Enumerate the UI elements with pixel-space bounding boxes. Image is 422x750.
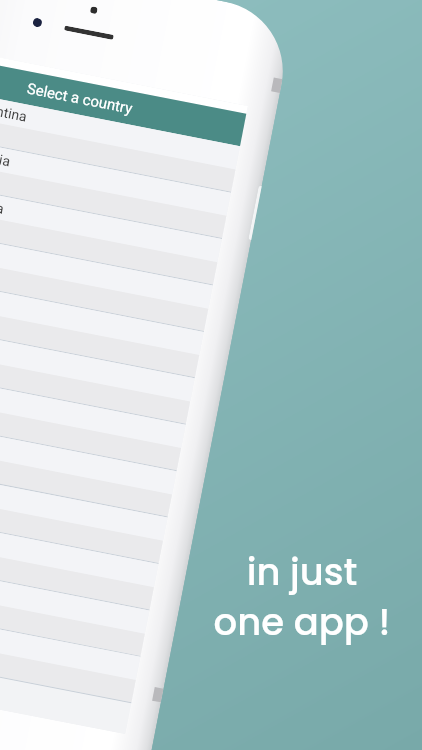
button[interactable]: Azerbaijan <box>0 278 204 378</box>
button[interactable]: Select a country <box>0 60 246 146</box>
button[interactable]: Bangladesh <box>0 417 176 517</box>
button[interactable]: Austria <box>0 232 213 332</box>
button[interactable]: Barbados <box>0 463 167 563</box>
button[interactable]: Bahamas <box>0 325 194 425</box>
staticText: Armenia <box>0 144 12 169</box>
staticText: Australia <box>0 191 6 217</box>
button[interactable]: Armenia <box>0 139 231 238</box>
staticText: Select a country <box>25 79 134 118</box>
button[interactable]: Belarus <box>0 511 158 610</box>
button[interactable]: Argentina <box>0 92 240 192</box>
button[interactable]: Bahrain <box>0 371 185 471</box>
staticText: one app ! <box>182 596 422 648</box>
other: Power button <box>248 185 262 240</box>
staticText: in just <box>182 546 422 598</box>
button[interactable]: Australia <box>0 186 222 286</box>
button[interactable]: Belize <box>0 603 140 703</box>
staticText: Argentina <box>0 97 29 125</box>
button[interactable]: Belgium <box>0 557 149 657</box>
